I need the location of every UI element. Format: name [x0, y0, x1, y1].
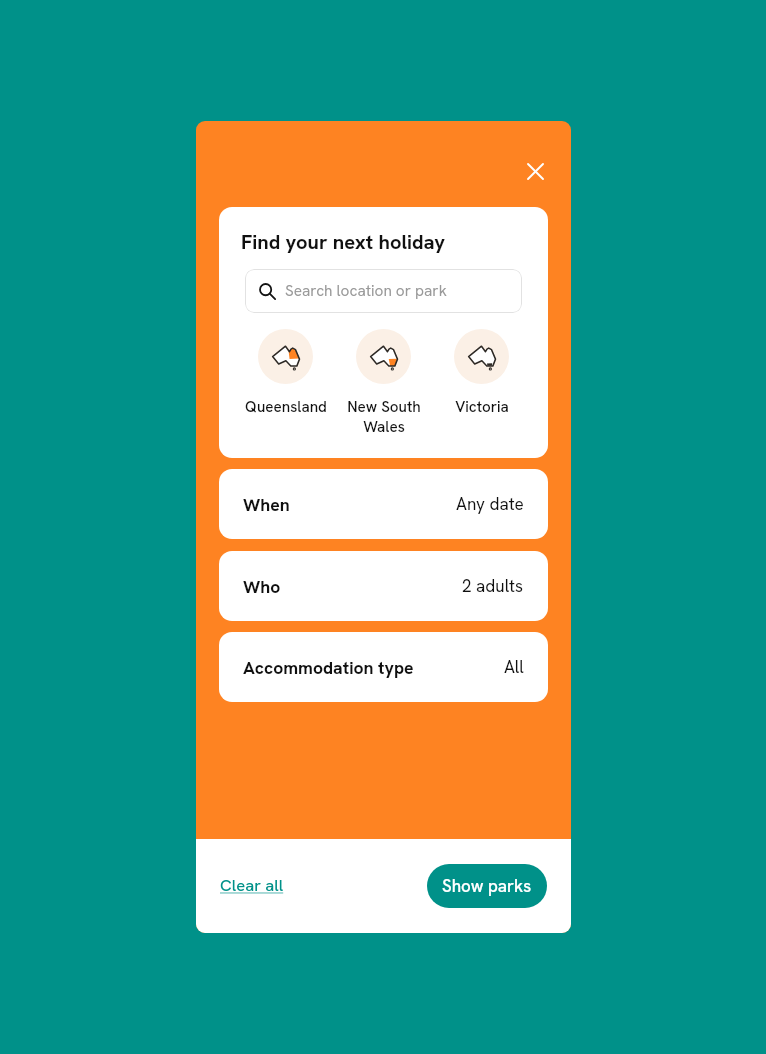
- staticText: When: [243, 493, 290, 516]
- staticText: Clear all: [220, 874, 284, 896]
- button[interactable]: Who: [219, 551, 548, 621]
- staticText: All: [504, 656, 524, 678]
- staticText: Show parks: [442, 875, 532, 897]
- staticText: Search location or park: [285, 281, 447, 301]
- button[interactable]: When: [219, 469, 548, 539]
- button[interactable]: Victoria: [434, 329, 529, 417]
- staticText: Who: [243, 575, 281, 598]
- staticText: Queensland: [245, 397, 327, 417]
- staticText: 2 adults: [462, 575, 524, 597]
- staticText: Find your next holiday: [241, 229, 446, 255]
- button[interactable]: Accommodation type: [219, 632, 548, 702]
- button[interactable]: New South Wales: [336, 329, 431, 437]
- button[interactable]: Clear all: [217, 869, 287, 901]
- staticText: Victoria: [455, 397, 509, 417]
- staticText: Accommodation type: [243, 656, 414, 679]
- button[interactable]: Close: [517, 153, 553, 189]
- button[interactable]: Show parks: [427, 864, 547, 908]
- button[interactable]: Search location or park: [245, 269, 522, 313]
- button[interactable]: Queensland: [238, 329, 333, 417]
- staticText: Any date: [456, 493, 524, 515]
- staticText: New South Wales: [347, 397, 421, 437]
